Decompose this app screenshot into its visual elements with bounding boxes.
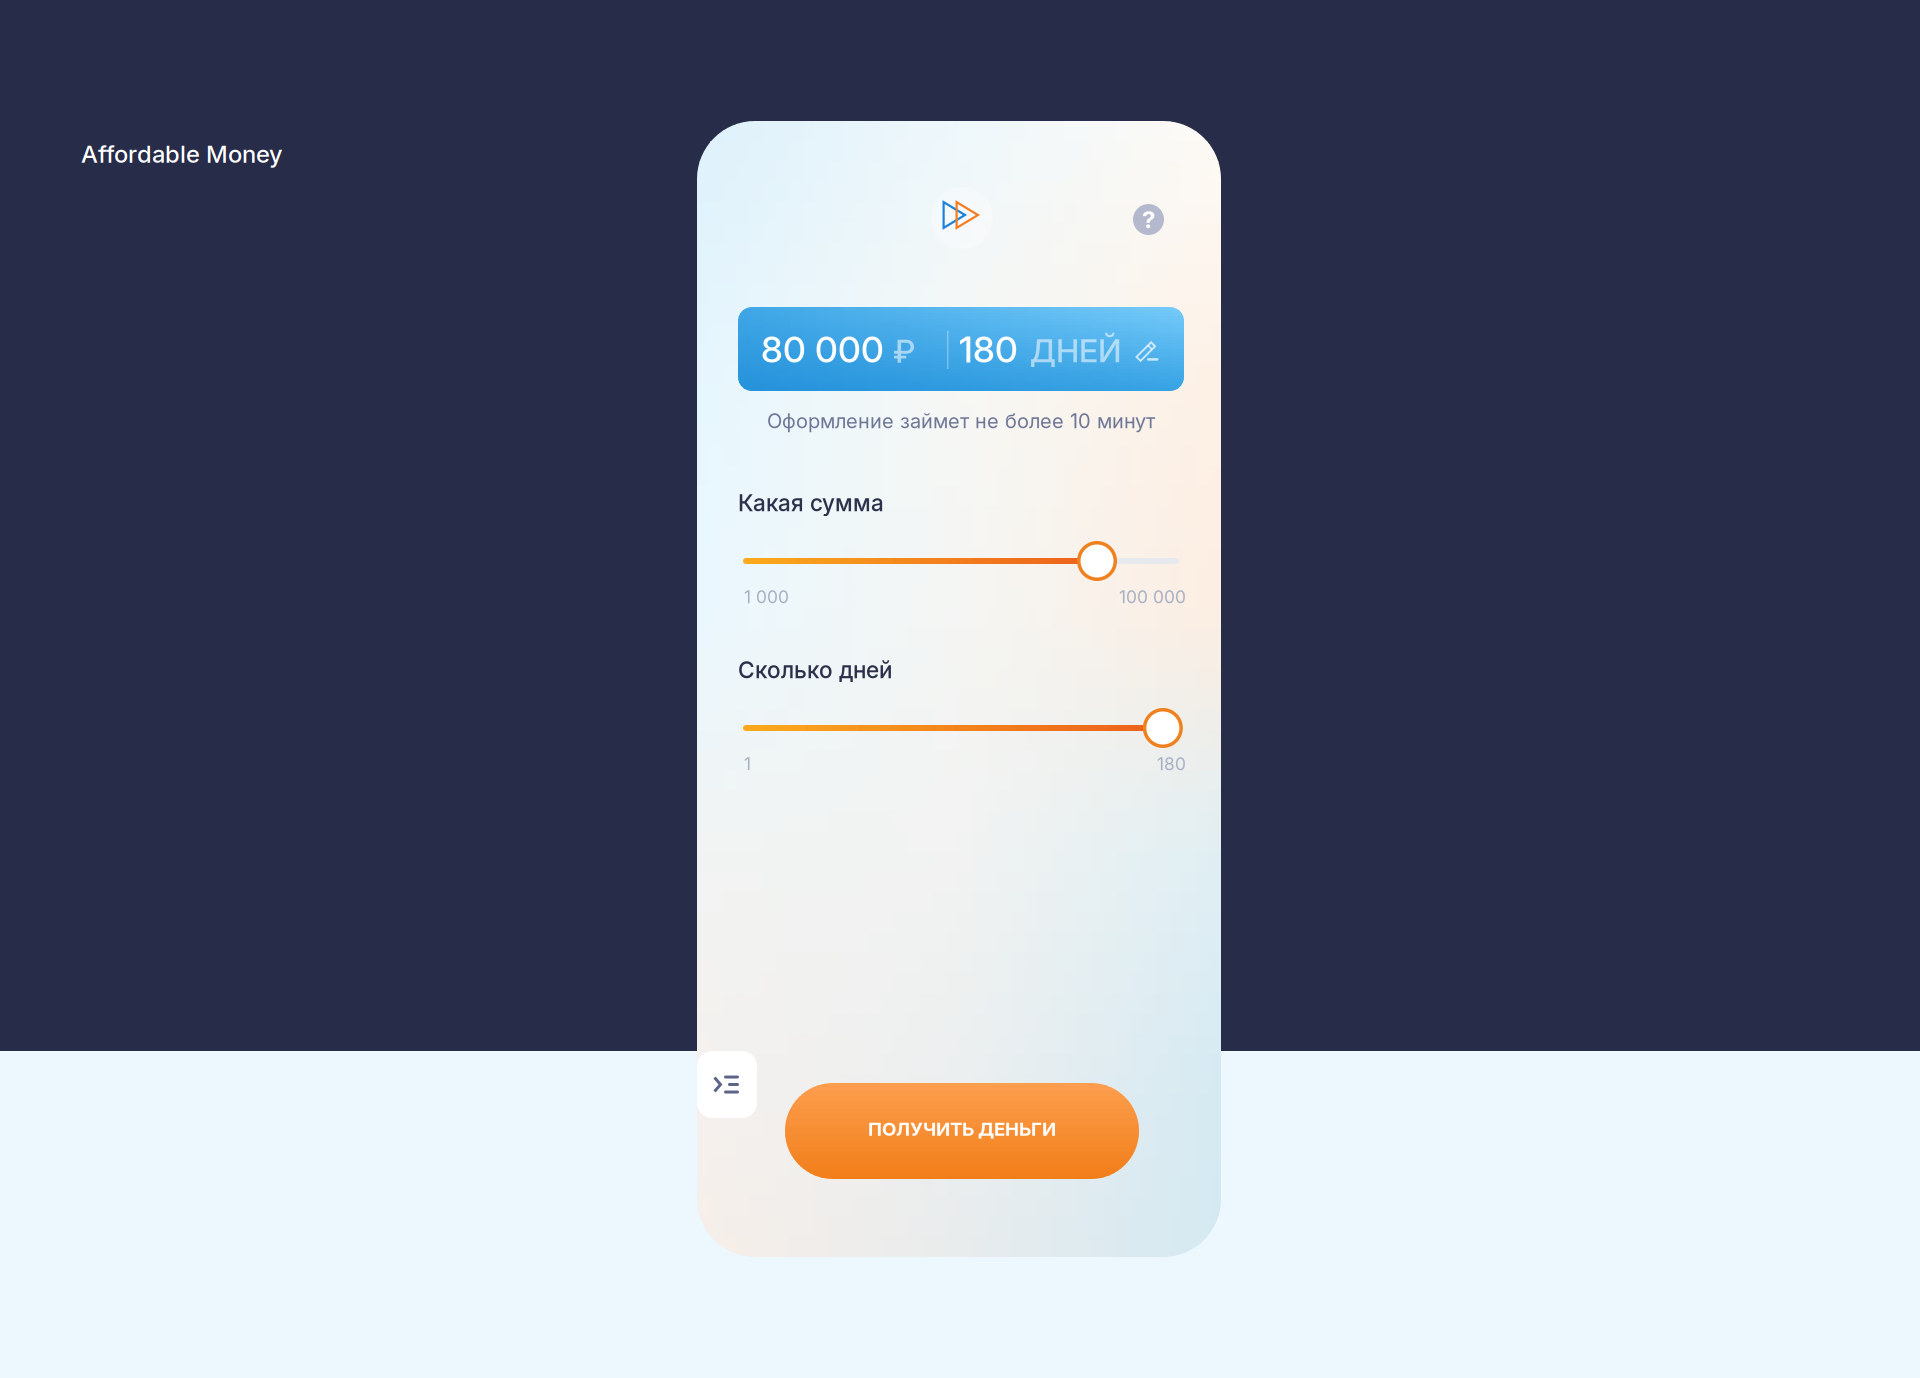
staticText: 1 xyxy=(744,753,751,774)
button[interactable]: Menu xyxy=(697,1051,757,1118)
staticText: ДНЕЙ xyxy=(1030,331,1121,370)
staticText: 180 xyxy=(1157,753,1186,774)
staticText: 180 xyxy=(959,328,1018,371)
staticText: Оформление займет не более 10 минут xyxy=(767,409,1155,433)
button[interactable]: Help xyxy=(1133,204,1164,235)
staticText: Affordable Money xyxy=(81,139,283,168)
staticText: 1 000 xyxy=(744,586,789,607)
staticText: ? xyxy=(1142,205,1155,234)
staticText: Сколько дней xyxy=(738,656,893,684)
button[interactable]: 80 000 рублей на 180 дней xyxy=(738,307,1184,391)
staticText: Какая сумма xyxy=(738,489,884,517)
staticText: 100 000 xyxy=(1119,586,1186,607)
staticText: 80 000 xyxy=(761,328,884,371)
button[interactable]: Affordable Money xyxy=(928,184,996,252)
staticText: ₽ xyxy=(893,332,915,370)
button[interactable]: ПОЛУЧИТЬ ДЕНЬГИ xyxy=(785,1083,1139,1179)
staticText: ПОЛУЧИТЬ ДЕНЬГИ xyxy=(868,1118,1056,1140)
